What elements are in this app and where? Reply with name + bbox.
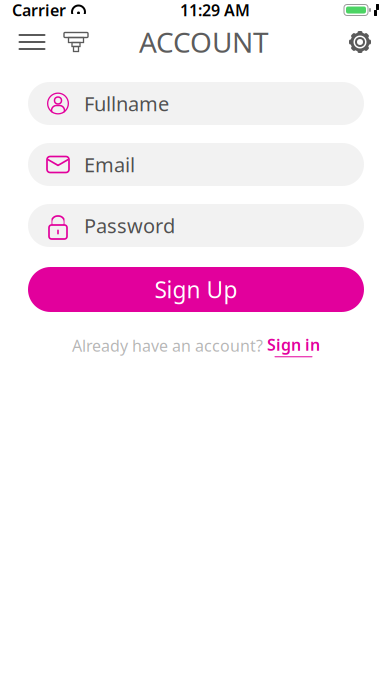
staticText: Sign in [267, 334, 320, 355]
button[interactable]: Settings [338, 20, 382, 64]
button[interactable]: Password [28, 204, 364, 247]
staticText: ACCOUNT [139, 23, 269, 61]
button[interactable]: Email [28, 143, 364, 186]
button[interactable]: Menu [10, 20, 54, 64]
staticText: Fullname [84, 90, 169, 117]
button[interactable]: Filter [54, 20, 98, 64]
staticText: Carrier [12, 0, 66, 21]
staticText: Password [84, 212, 175, 239]
staticText: Sign Up [154, 274, 237, 304]
button[interactable]: Already have an account? [52, 326, 340, 365]
button[interactable]: Fullname [28, 82, 364, 125]
button[interactable]: Sign Up [28, 267, 364, 312]
staticText: 11:29 AM [180, 0, 250, 21]
staticText: Email [84, 151, 135, 178]
staticText: Already have an account? [72, 335, 263, 356]
